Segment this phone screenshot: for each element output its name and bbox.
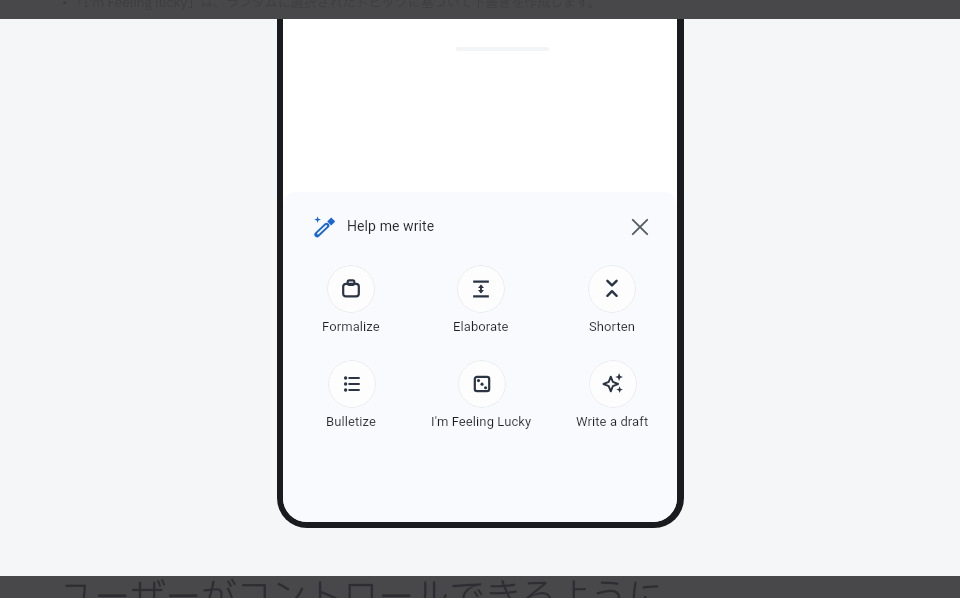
button[interactable]: Write a draft xyxy=(552,360,672,433)
button[interactable] xyxy=(622,209,658,245)
staticText: Write a draft xyxy=(576,414,649,429)
button[interactable]: Elaborate xyxy=(421,265,541,338)
staticText: ユーザーがコントロールできるように xyxy=(59,571,663,598)
button[interactable]: Shorten xyxy=(552,265,672,338)
button[interactable]: I'm Feeling Lucky xyxy=(421,360,541,433)
staticText: Elaborate xyxy=(453,319,509,334)
button[interactable]: Formalize xyxy=(291,265,411,338)
staticText: Help me write xyxy=(347,218,435,234)
staticText: I'm Feeling Lucky xyxy=(431,414,532,429)
staticText: Shorten xyxy=(589,319,636,334)
button[interactable]: Bulletize xyxy=(291,360,411,433)
staticText: Bulletize xyxy=(326,414,377,429)
staticText: Formalize xyxy=(322,319,380,334)
